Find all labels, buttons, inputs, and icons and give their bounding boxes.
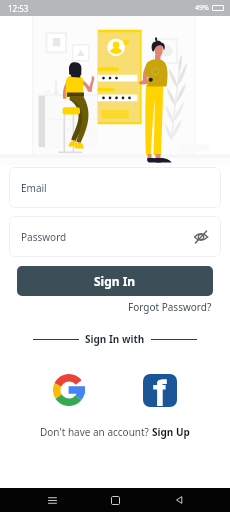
button[interactable]: Recents bbox=[40, 488, 64, 512]
button[interactable]: Sign in with Google bbox=[52, 372, 88, 408]
button[interactable]: Email bbox=[9, 167, 221, 208]
button[interactable]: Back bbox=[167, 488, 191, 512]
button[interactable]: Forgot Password? bbox=[128, 300, 212, 314]
staticText: Don't have an account? bbox=[40, 425, 152, 439]
button[interactable]: Sign in with Facebook bbox=[142, 372, 178, 408]
button[interactable]: Sign Up bbox=[152, 425, 190, 439]
staticText: Password bbox=[21, 230, 67, 244]
staticText: Sign In with bbox=[85, 332, 145, 346]
button[interactable]: Sign In bbox=[17, 266, 213, 296]
staticText: Sign In bbox=[94, 273, 136, 289]
button[interactable]: Home bbox=[103, 488, 127, 512]
staticText: 12:53 bbox=[8, 3, 29, 14]
staticText: Email bbox=[21, 181, 47, 195]
button[interactable]: Password bbox=[9, 216, 221, 257]
other: Toggle password visibility bbox=[193, 229, 209, 245]
staticText: 49% bbox=[195, 3, 209, 13]
